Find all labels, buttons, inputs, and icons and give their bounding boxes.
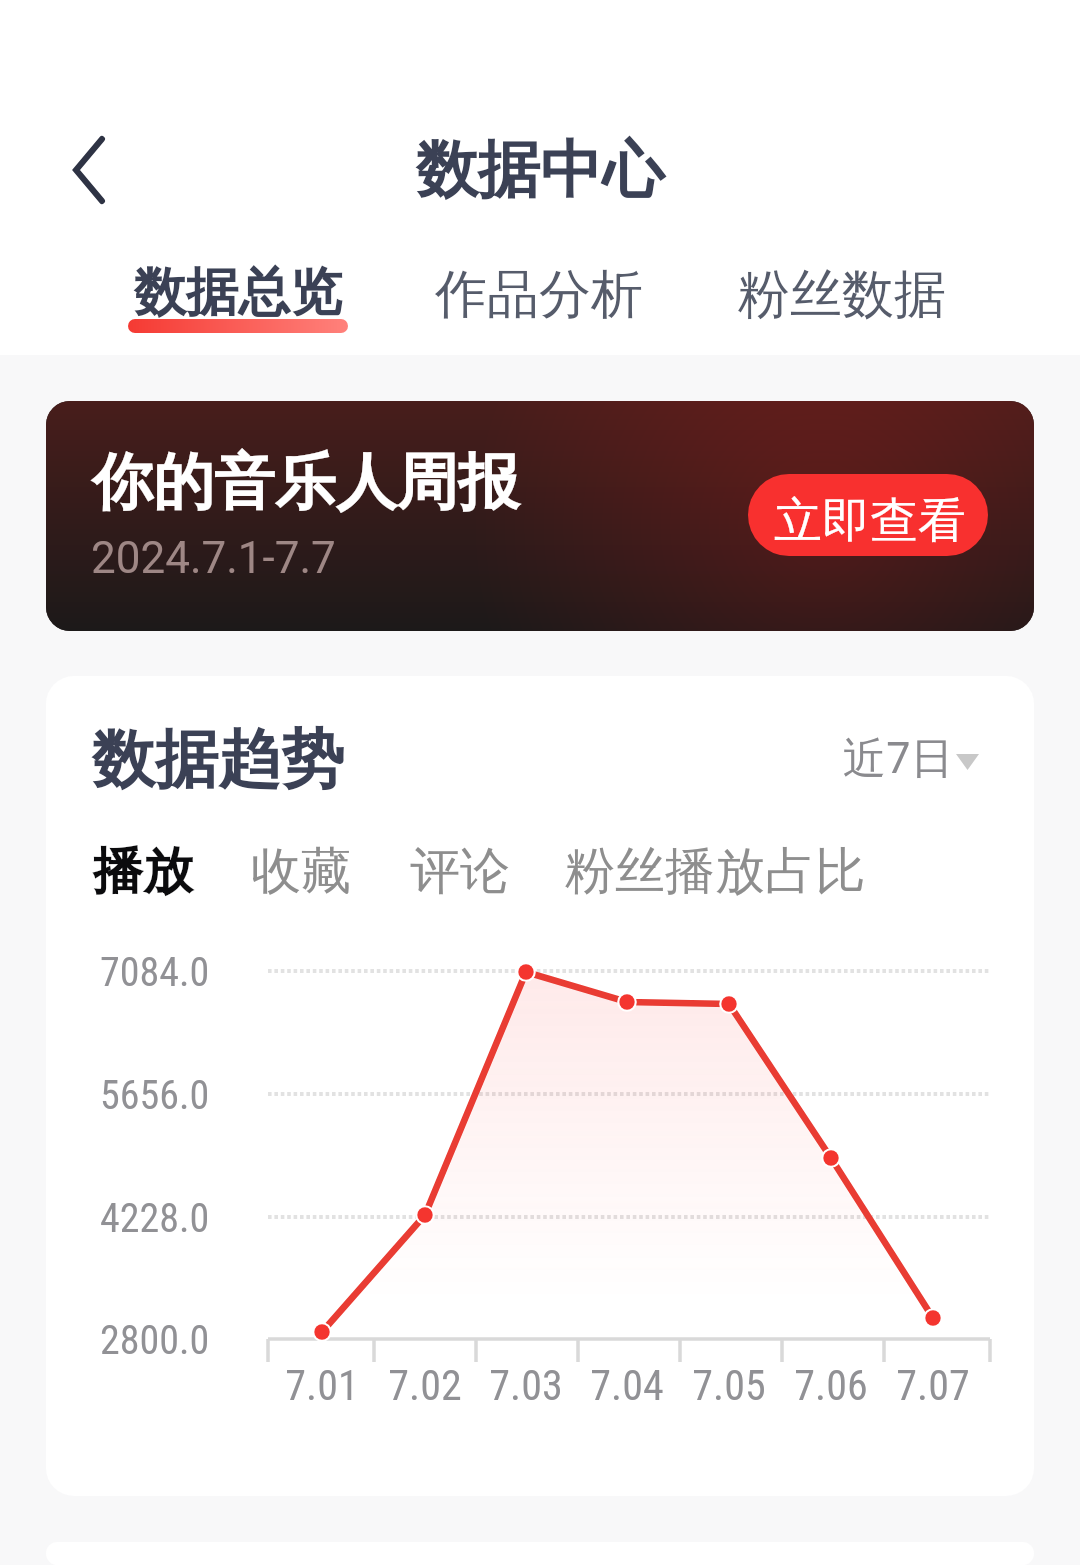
staticText: 7.01 <box>285 1361 359 1410</box>
staticText: 5656.0 <box>100 1072 210 1119</box>
staticText: 7.02 <box>388 1361 462 1410</box>
staticText: 评论 <box>410 840 510 903</box>
staticText: 数据中心 <box>416 131 664 209</box>
button[interactable]: Back <box>40 115 150 225</box>
staticText: 作品分析 <box>435 262 643 328</box>
button[interactable]: 立即查看 <box>748 474 988 556</box>
button[interactable]: 数据总览 <box>108 246 368 342</box>
button[interactable]: 播放 <box>93 840 193 903</box>
staticText: 收藏 <box>251 840 351 903</box>
staticText: 播放 <box>93 840 193 903</box>
staticText: 7084.0 <box>100 949 210 996</box>
staticText: 2800.0 <box>100 1317 210 1364</box>
button[interactable]: 作品分析 <box>417 246 661 342</box>
staticText: 2024.7.1-7.7 <box>91 532 336 584</box>
staticText: 7.05 <box>692 1361 766 1410</box>
staticText: 粉丝播放占比 <box>565 840 865 903</box>
staticText: 7.06 <box>794 1361 868 1410</box>
staticText: 7.04 <box>590 1361 664 1410</box>
staticText: 7.03 <box>489 1361 563 1410</box>
button[interactable]: 你的音乐人周报 <box>46 401 1034 631</box>
staticText: 数据趋势 <box>92 720 344 799</box>
staticText: 你的音乐人周报 <box>92 444 519 521</box>
staticText: 数据总览 <box>134 260 342 326</box>
button[interactable]: 近7日 <box>826 716 1034 796</box>
button[interactable]: 粉丝播放占比 <box>565 840 865 903</box>
button[interactable]: 收藏 <box>251 840 351 903</box>
staticText: 立即查看 <box>774 491 966 551</box>
staticText: 4228.0 <box>100 1195 210 1242</box>
staticText: 粉丝数据 <box>738 262 946 328</box>
button[interactable]: 粉丝数据 <box>720 246 964 342</box>
button[interactable]: 评论 <box>410 840 510 903</box>
staticText: 7.07 <box>896 1361 970 1410</box>
staticText: 近7日 <box>843 727 954 786</box>
